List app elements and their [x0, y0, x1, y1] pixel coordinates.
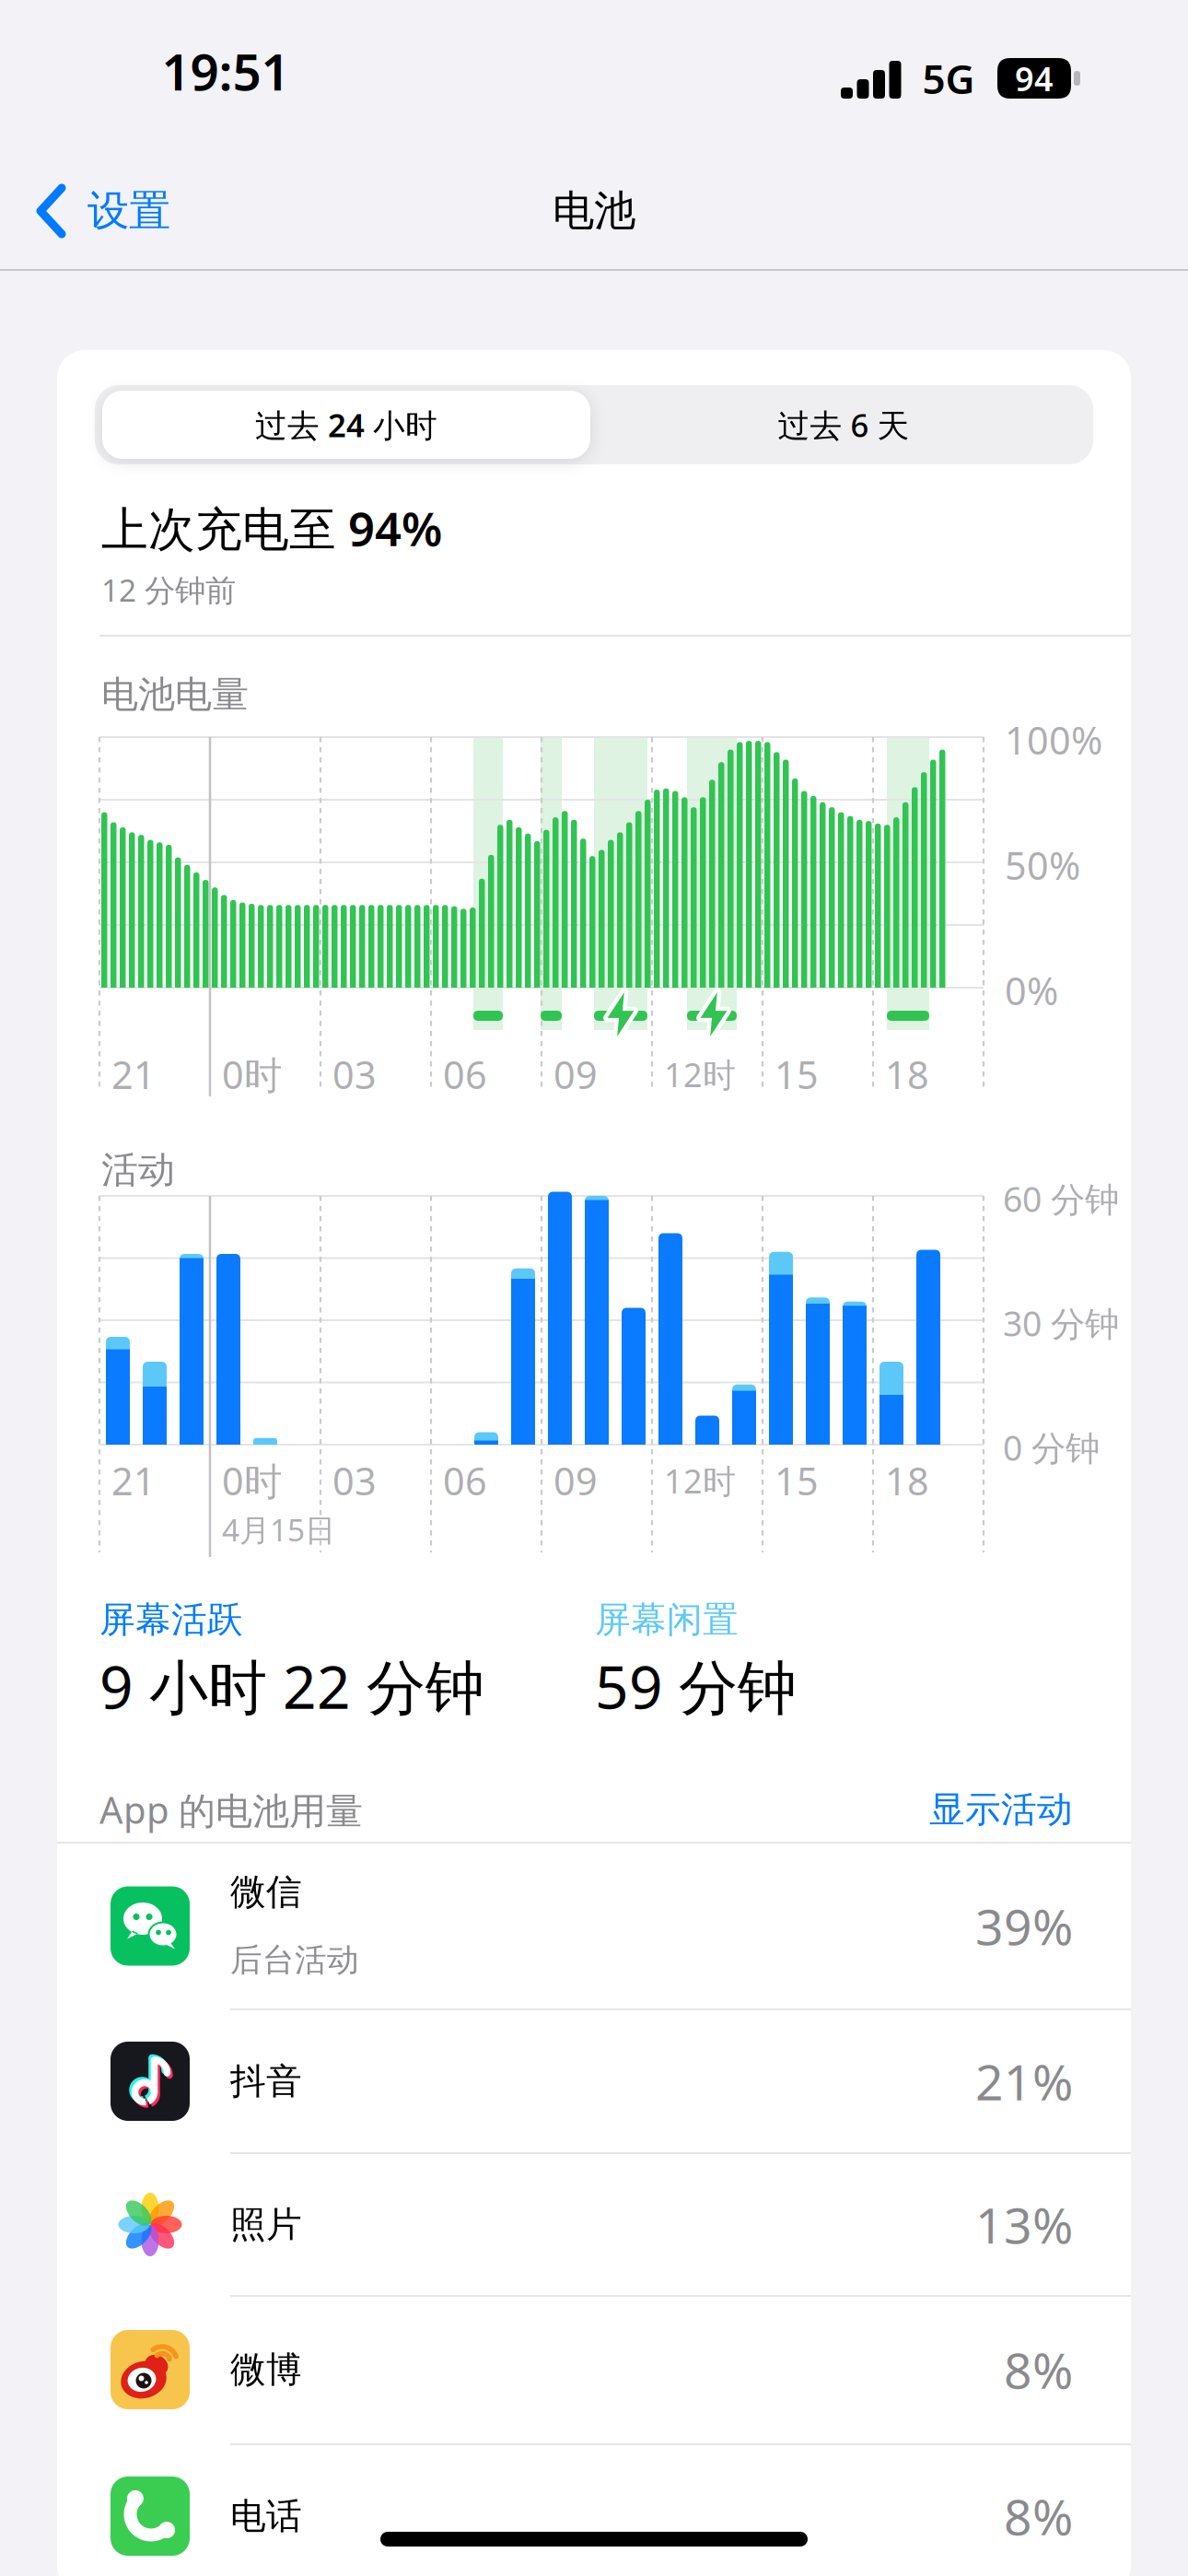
- staticText: 过去 6 天: [778, 404, 909, 446]
- staticText: 上次充电至 94%: [101, 497, 442, 559]
- button[interactable]: 设置: [37, 186, 276, 236]
- button[interactable]: 抖音: [57, 2009, 1131, 2153]
- staticText: 06: [443, 1049, 487, 1100]
- staticText: 设置: [87, 185, 170, 237]
- staticText: 100%: [1005, 715, 1102, 765]
- staticText: 8%: [1004, 2337, 1073, 2402]
- staticText: 59 分钟: [595, 1647, 797, 1725]
- staticText: 94: [1015, 56, 1054, 100]
- staticText: 9 小时 22 分钟: [99, 1647, 484, 1725]
- staticText: 电池: [553, 185, 635, 237]
- staticText: 15: [775, 1049, 819, 1100]
- staticText: 0时: [222, 1049, 282, 1100]
- button[interactable]: 微信: [57, 1843, 1131, 2009]
- button[interactable]: 照片: [57, 2153, 1131, 2296]
- staticText: 39%: [975, 1893, 1073, 1959]
- staticText: 09: [553, 1455, 598, 1506]
- staticText: 12 分钟前: [101, 569, 236, 610]
- staticText: 电话: [230, 2494, 302, 2538]
- staticText: 13%: [975, 2192, 1073, 2257]
- staticText: 0时: [222, 1455, 282, 1506]
- staticText: 21: [111, 1049, 156, 1100]
- staticText: 18: [885, 1455, 929, 1506]
- button[interactable]: 过去 6 天: [600, 391, 1088, 459]
- button[interactable]: 微博: [57, 2296, 1131, 2443]
- staticText: 活动: [101, 1147, 175, 1193]
- staticText: 30 分钟: [1003, 1300, 1119, 1346]
- staticText: 21: [111, 1455, 156, 1506]
- staticText: 显示活动: [929, 1788, 1073, 1831]
- staticText: 15: [775, 1455, 819, 1506]
- staticText: 18: [885, 1049, 929, 1100]
- staticText: 12时: [664, 1052, 736, 1096]
- button[interactable]: 电话: [57, 2444, 1131, 2576]
- staticText: 微信: [230, 1870, 302, 1914]
- staticText: 抖音: [230, 2059, 302, 2103]
- button[interactable]: 过去 24 小时: [102, 391, 590, 459]
- staticText: 03: [332, 1455, 377, 1506]
- staticText: 4月15日: [222, 1509, 335, 1550]
- staticText: 19:51: [162, 37, 290, 104]
- staticText: 后台活动: [230, 1940, 359, 1980]
- staticText: 屏幕活跃: [99, 1598, 243, 1642]
- staticText: 照片: [230, 2203, 302, 2246]
- staticText: 0 分钟: [1003, 1425, 1100, 1470]
- staticText: 50%: [1005, 840, 1080, 890]
- staticText: 06: [443, 1455, 487, 1506]
- staticText: 5G: [922, 51, 975, 105]
- staticText: 21%: [975, 2049, 1073, 2114]
- button[interactable]: 显示活动: [705, 1782, 1073, 1837]
- staticText: 0%: [1005, 965, 1058, 1016]
- staticText: App 的电池用量: [99, 1785, 363, 1834]
- staticText: 过去 24 小时: [255, 404, 437, 446]
- staticText: 03: [332, 1049, 377, 1100]
- staticText: 8%: [1004, 2483, 1073, 2549]
- staticText: 09: [553, 1049, 598, 1100]
- staticText: 微博: [230, 2348, 302, 2392]
- staticText: 12时: [664, 1459, 736, 1503]
- staticText: 屏幕闲置: [595, 1598, 739, 1642]
- staticText: 60 分钟: [1003, 1176, 1119, 1221]
- staticText: 电池电量: [101, 672, 249, 717]
